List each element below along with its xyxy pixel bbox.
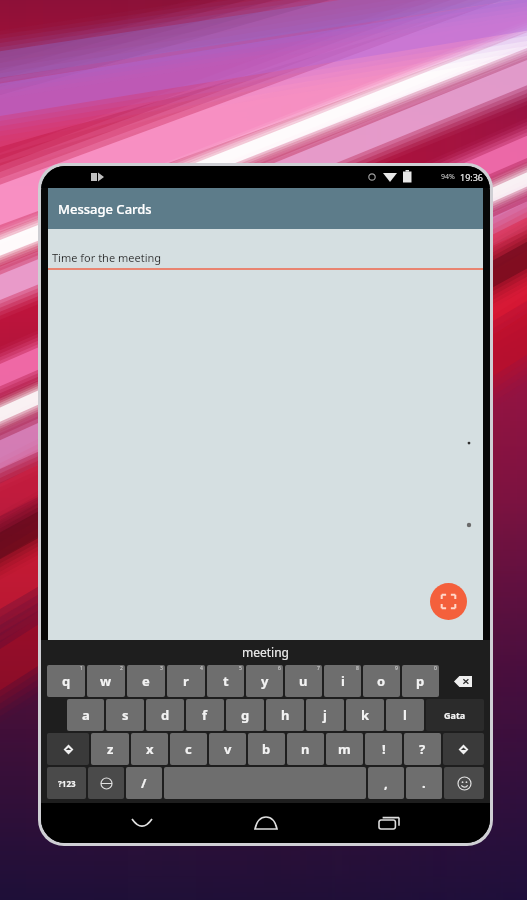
staticText: b	[262, 740, 271, 758]
button[interactable]: p	[402, 665, 439, 697]
staticText: j	[323, 706, 327, 724]
button[interactable]: !	[365, 733, 402, 765]
staticText: 0	[434, 665, 437, 672]
staticText: 9	[395, 665, 398, 672]
button[interactable]: Shift	[443, 733, 484, 765]
button[interactable]: l	[386, 699, 424, 731]
button[interactable]: z	[91, 733, 129, 765]
staticText: Message Cards	[58, 200, 152, 218]
staticText: q	[62, 672, 71, 690]
staticText: 7	[317, 665, 320, 672]
staticText: e	[142, 672, 150, 690]
staticText: ,	[384, 774, 388, 792]
button[interactable]: t	[207, 665, 244, 697]
button[interactable]: Message Cards	[48, 188, 483, 229]
staticText: meeting	[242, 644, 289, 660]
button[interactable]: ?	[404, 733, 441, 765]
staticText: n	[301, 740, 310, 758]
button[interactable]: Language	[88, 767, 124, 799]
button[interactable]: o	[363, 665, 400, 697]
button[interactable]: ,	[368, 767, 404, 799]
staticText: 5	[239, 665, 242, 672]
button[interactable]: Gata	[426, 699, 484, 731]
button[interactable]: b	[248, 733, 285, 765]
staticText: o	[377, 672, 386, 690]
staticText: !	[382, 740, 386, 758]
button[interactable]: e	[127, 665, 165, 697]
staticText: t	[223, 672, 229, 690]
staticText: v	[224, 740, 232, 758]
staticText: /	[141, 774, 147, 792]
button[interactable]: k	[346, 699, 384, 731]
staticText: Time for the meeting	[52, 250, 162, 265]
button[interactable]: s	[106, 699, 144, 731]
button[interactable]: v	[209, 733, 246, 765]
staticText: h	[281, 706, 290, 724]
staticText: 8	[356, 665, 359, 672]
staticText: ?123	[58, 778, 76, 789]
staticText: i	[341, 672, 345, 690]
staticText: .	[422, 774, 426, 792]
staticText: g	[241, 706, 250, 724]
button[interactable]: w	[87, 665, 125, 697]
button[interactable]: d	[146, 699, 184, 731]
staticText: f	[202, 706, 208, 724]
staticText: Gata	[444, 709, 466, 721]
staticText: l	[403, 706, 407, 724]
button[interactable]: ?123	[47, 767, 86, 799]
staticText: 1	[80, 665, 83, 672]
staticText: z	[107, 740, 114, 758]
button[interactable]: h	[266, 699, 304, 731]
button[interactable]: Home	[243, 803, 289, 843]
staticText: r	[183, 672, 189, 690]
button[interactable]: .	[406, 767, 442, 799]
button[interactable]: Recents	[366, 803, 412, 843]
button[interactable]: Backspace	[441, 665, 484, 697]
staticText: m	[338, 740, 351, 758]
staticText: 6	[278, 665, 281, 672]
button[interactable]: n	[287, 733, 324, 765]
staticText: 94%	[441, 172, 455, 182]
button[interactable]: y	[246, 665, 283, 697]
button[interactable]: Emoji	[444, 767, 484, 799]
staticText: y	[261, 672, 269, 690]
staticText: a	[82, 706, 90, 724]
button[interactable]: Expand	[430, 583, 467, 620]
staticText: 4	[200, 665, 203, 672]
staticText: 3	[160, 665, 163, 672]
button[interactable]: a	[67, 699, 104, 731]
button[interactable]: u	[285, 665, 322, 697]
staticText: c	[185, 740, 192, 758]
staticText: x	[146, 740, 154, 758]
staticText: d	[161, 706, 170, 724]
button[interactable]: /	[126, 767, 162, 799]
button[interactable]: m	[326, 733, 363, 765]
button[interactable]: f	[186, 699, 224, 731]
button[interactable]: q	[47, 665, 85, 697]
staticText: u	[299, 672, 308, 690]
staticText: 19:36	[460, 171, 484, 183]
button[interactable]: Back	[119, 803, 165, 843]
button[interactable]: r	[167, 665, 205, 697]
button[interactable]: Shift	[47, 733, 89, 765]
staticText: w	[100, 672, 112, 690]
staticText: ?	[419, 740, 426, 758]
button[interactable]: c	[170, 733, 207, 765]
staticText: s	[122, 706, 129, 724]
staticText: 2	[120, 665, 123, 672]
button[interactable]: g	[226, 699, 264, 731]
button[interactable]: i	[324, 665, 361, 697]
button[interactable]: meeting	[41, 640, 490, 664]
button[interactable]: j	[306, 699, 344, 731]
staticText: k	[361, 706, 370, 724]
staticText: p	[416, 672, 425, 690]
button[interactable]: x	[131, 733, 168, 765]
